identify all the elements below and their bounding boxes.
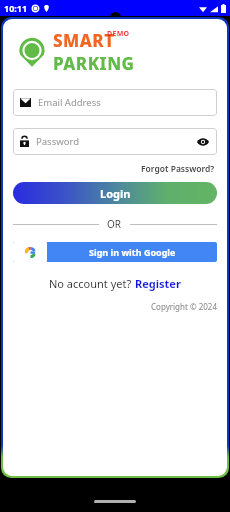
button[interactable]: Show password xyxy=(196,135,210,149)
staticText: Login xyxy=(100,186,131,201)
staticText: DEMO xyxy=(107,29,130,39)
button[interactable]: Register xyxy=(135,276,181,291)
staticText: OR xyxy=(107,217,122,231)
staticText: Email Address xyxy=(38,96,210,109)
button[interactable]: Forgot Password? xyxy=(139,161,217,177)
button[interactable]: Email Address xyxy=(13,89,217,116)
staticText: PARKING xyxy=(53,52,135,75)
staticText: SMART xyxy=(53,29,115,52)
staticText: 10:11 xyxy=(4,2,28,14)
staticText: Password xyxy=(36,135,196,148)
button[interactable]: Sign in with Google xyxy=(13,242,217,262)
staticText: No account yet? xyxy=(49,276,135,291)
staticText: Sign in with Google xyxy=(89,246,176,258)
button[interactable]: Login xyxy=(13,182,217,204)
staticText: Copyright © 2024 xyxy=(151,301,217,312)
button[interactable]: Password xyxy=(13,128,217,155)
